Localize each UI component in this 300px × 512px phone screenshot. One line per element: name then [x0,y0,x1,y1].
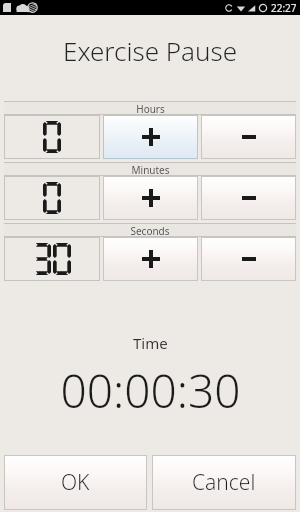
staticText: 22:27 [271,1,297,15]
staticText: Hours [136,102,165,114]
button[interactable]: OK [5,456,146,509]
button[interactable]: Decrease Hours [202,116,295,158]
button[interactable]: Decrease Seconds [202,238,295,280]
staticText: Cancel [192,468,256,497]
button[interactable]: Minutes value 0 [5,177,99,219]
button[interactable]: Increase Seconds [104,238,197,280]
button[interactable]: Increase Hours [104,116,197,158]
staticText: Exercise Pause [63,33,237,68]
button[interactable]: Seconds value 30 [5,238,99,280]
staticText: OK [61,468,90,497]
staticText: Time [133,333,168,353]
button[interactable]: Cancel [153,456,295,509]
button[interactable]: Hours value 0 [5,116,99,158]
button[interactable]: Decrease Minutes [202,177,295,219]
staticText: Seconds [130,224,170,236]
staticText: Minutes [131,163,170,175]
button[interactable]: Increase Minutes [104,177,197,219]
staticText: 00:00:30 [60,359,241,422]
